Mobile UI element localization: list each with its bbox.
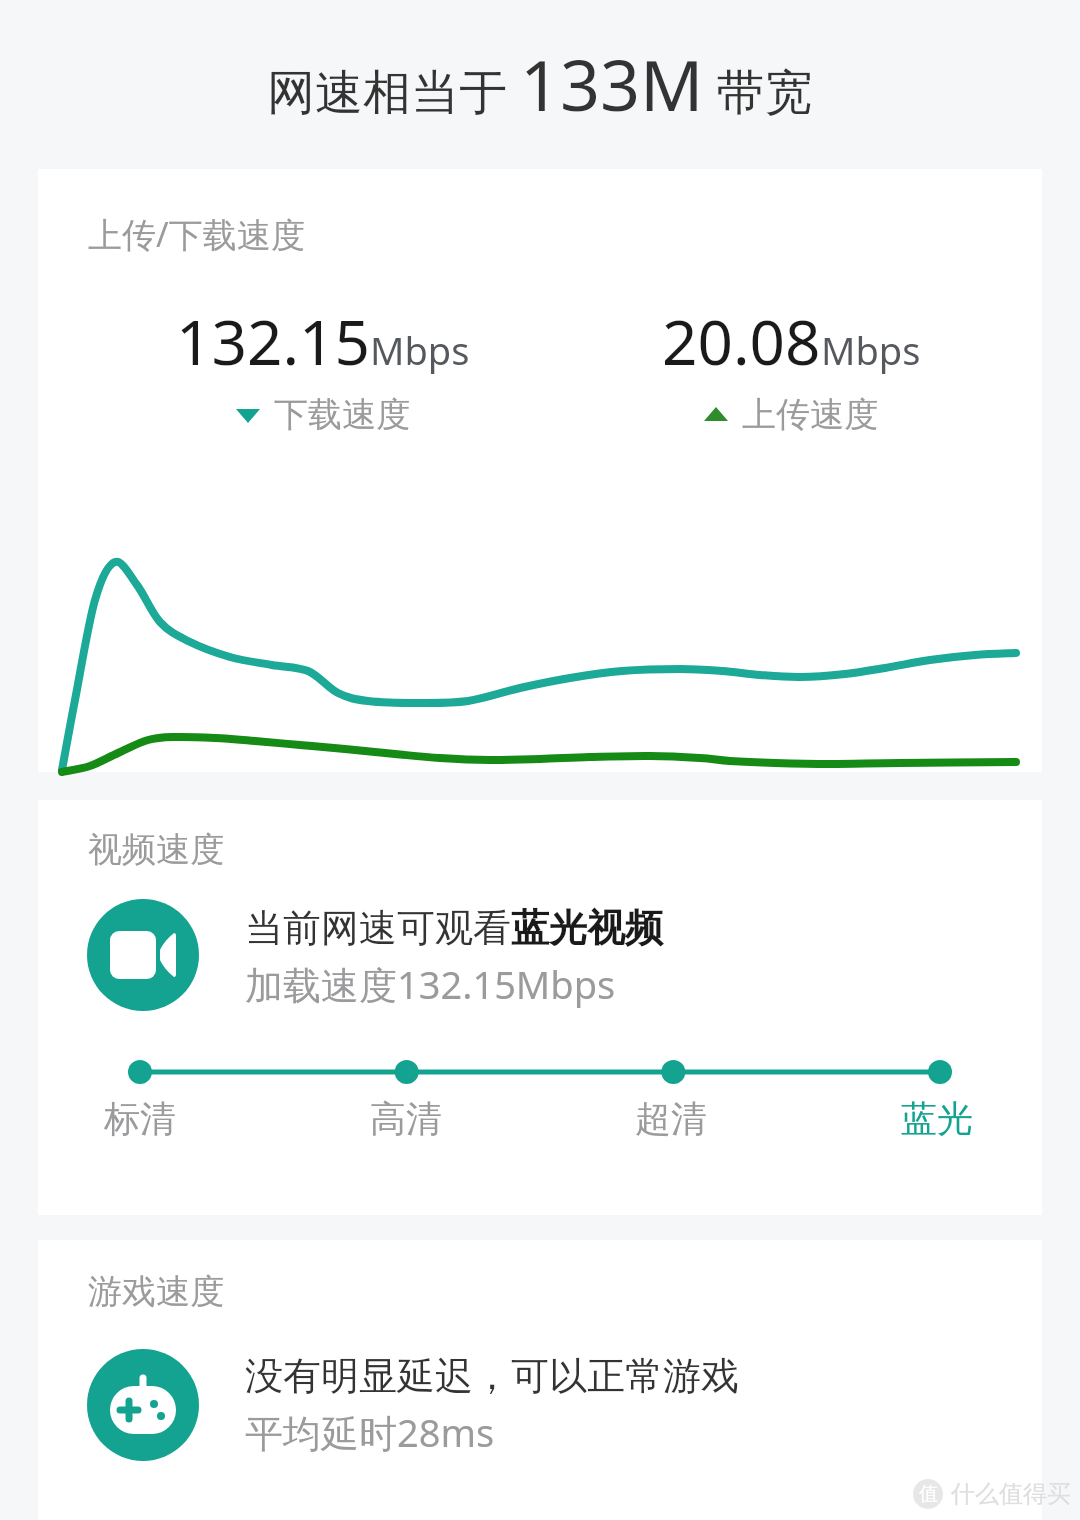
staticText: Mbps: [370, 324, 470, 376]
staticText: 标清: [104, 1096, 176, 1141]
staticText: 带宽: [704, 58, 813, 124]
staticText: 平均延时28ms: [245, 1406, 495, 1458]
staticText: 上传/下载速度: [88, 211, 305, 257]
staticText: 值: [919, 1482, 938, 1506]
button[interactable]: [87, 899, 199, 1011]
staticText: Mbps: [821, 324, 921, 376]
staticText: 视频速度: [88, 828, 224, 871]
button[interactable]: 标清: [70, 1096, 210, 1141]
staticText: 133M: [520, 36, 704, 131]
button[interactable]: [87, 1349, 199, 1461]
button[interactable]: 蓝光: [867, 1096, 1007, 1141]
staticText: 132.15: [176, 299, 370, 383]
staticText: 当前网速可观看蓝光视频: [245, 904, 663, 952]
button[interactable]: 超清: [601, 1096, 741, 1141]
staticText: 什么值得买: [951, 1479, 1071, 1509]
staticText: 网速相当于: [267, 58, 520, 124]
staticText: 高清: [370, 1096, 442, 1141]
staticText: 游戏速度: [88, 1270, 224, 1313]
staticText: 没有明显延迟，可以正常游戏: [245, 1352, 739, 1400]
staticText: 20.08: [662, 299, 821, 383]
staticText: 超清: [635, 1096, 707, 1141]
staticText: 上传速度: [742, 393, 878, 436]
button[interactable]: 高清: [336, 1096, 476, 1141]
staticText: 下载速度: [274, 393, 410, 436]
staticText: 加载速度132.15Mbps: [245, 958, 616, 1010]
staticText: 蓝光: [901, 1096, 973, 1141]
